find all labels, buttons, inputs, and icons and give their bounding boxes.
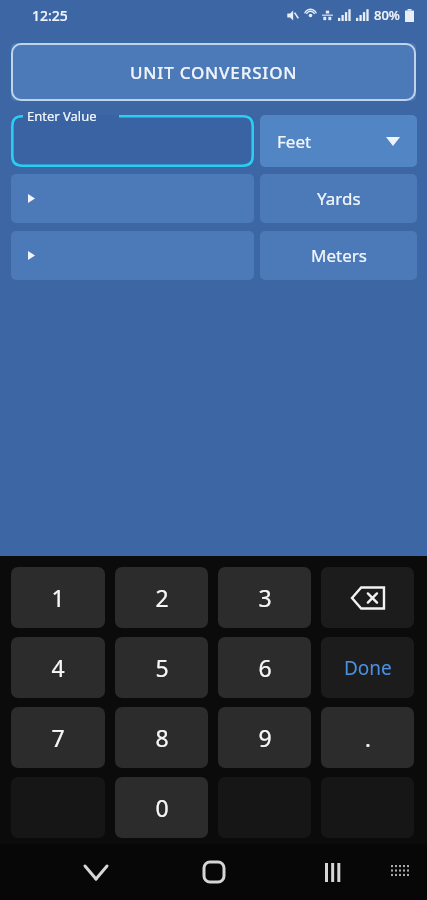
- staticText: 1: [51, 582, 65, 613]
- button[interactable]: UNIT CONVERSION: [11, 43, 416, 101]
- button[interactable]: Done: [321, 637, 414, 698]
- button[interactable]: Home: [190, 848, 238, 896]
- staticText: Feet: [277, 130, 312, 153]
- other: Open unit list: [386, 137, 400, 146]
- staticText: 3: [258, 582, 272, 613]
- button[interactable]: .: [321, 707, 414, 768]
- button[interactable]: 0: [115, 777, 208, 838]
- button[interactable]: 8: [115, 707, 208, 768]
- staticText: 12:25: [32, 6, 68, 25]
- staticText: UNIT CONVERSION: [130, 61, 298, 84]
- button[interactable]: [11, 174, 254, 223]
- button[interactable]: 5: [115, 637, 208, 698]
- button[interactable]: Meters: [260, 231, 417, 280]
- staticText: 7: [51, 722, 65, 753]
- staticText: .: [365, 723, 371, 753]
- staticText: 2: [155, 582, 169, 613]
- button[interactable]: Hide keyboard: [72, 848, 120, 896]
- staticText: Enter Value: [27, 107, 97, 125]
- staticText: 4: [51, 652, 65, 683]
- button[interactable]: 2: [115, 567, 208, 628]
- staticText: 5: [155, 652, 169, 683]
- button[interactable]: [11, 115, 254, 167]
- staticText: 0: [155, 792, 169, 823]
- button[interactable]: 3: [218, 567, 311, 628]
- staticText: 8: [155, 722, 169, 753]
- staticText: 6: [258, 652, 272, 683]
- button[interactable]: Recent apps: [309, 848, 357, 896]
- button[interactable]: 1: [11, 567, 105, 628]
- staticText: Yards: [317, 187, 361, 210]
- staticText: Meters: [311, 244, 367, 267]
- button[interactable]: 4: [11, 637, 105, 698]
- button[interactable]: Feet: [260, 115, 417, 167]
- button[interactable]: Yards: [260, 174, 417, 223]
- button[interactable]: 9: [218, 707, 311, 768]
- staticText: 9: [258, 722, 272, 753]
- button[interactable]: Switch keyboard: [381, 852, 421, 892]
- button[interactable]: Backspace: [321, 567, 414, 628]
- button[interactable]: [11, 231, 254, 280]
- staticText: Done: [344, 655, 392, 681]
- button[interactable]: 7: [11, 707, 105, 768]
- button[interactable]: 6: [218, 637, 311, 698]
- staticText: 80%: [374, 6, 400, 24]
